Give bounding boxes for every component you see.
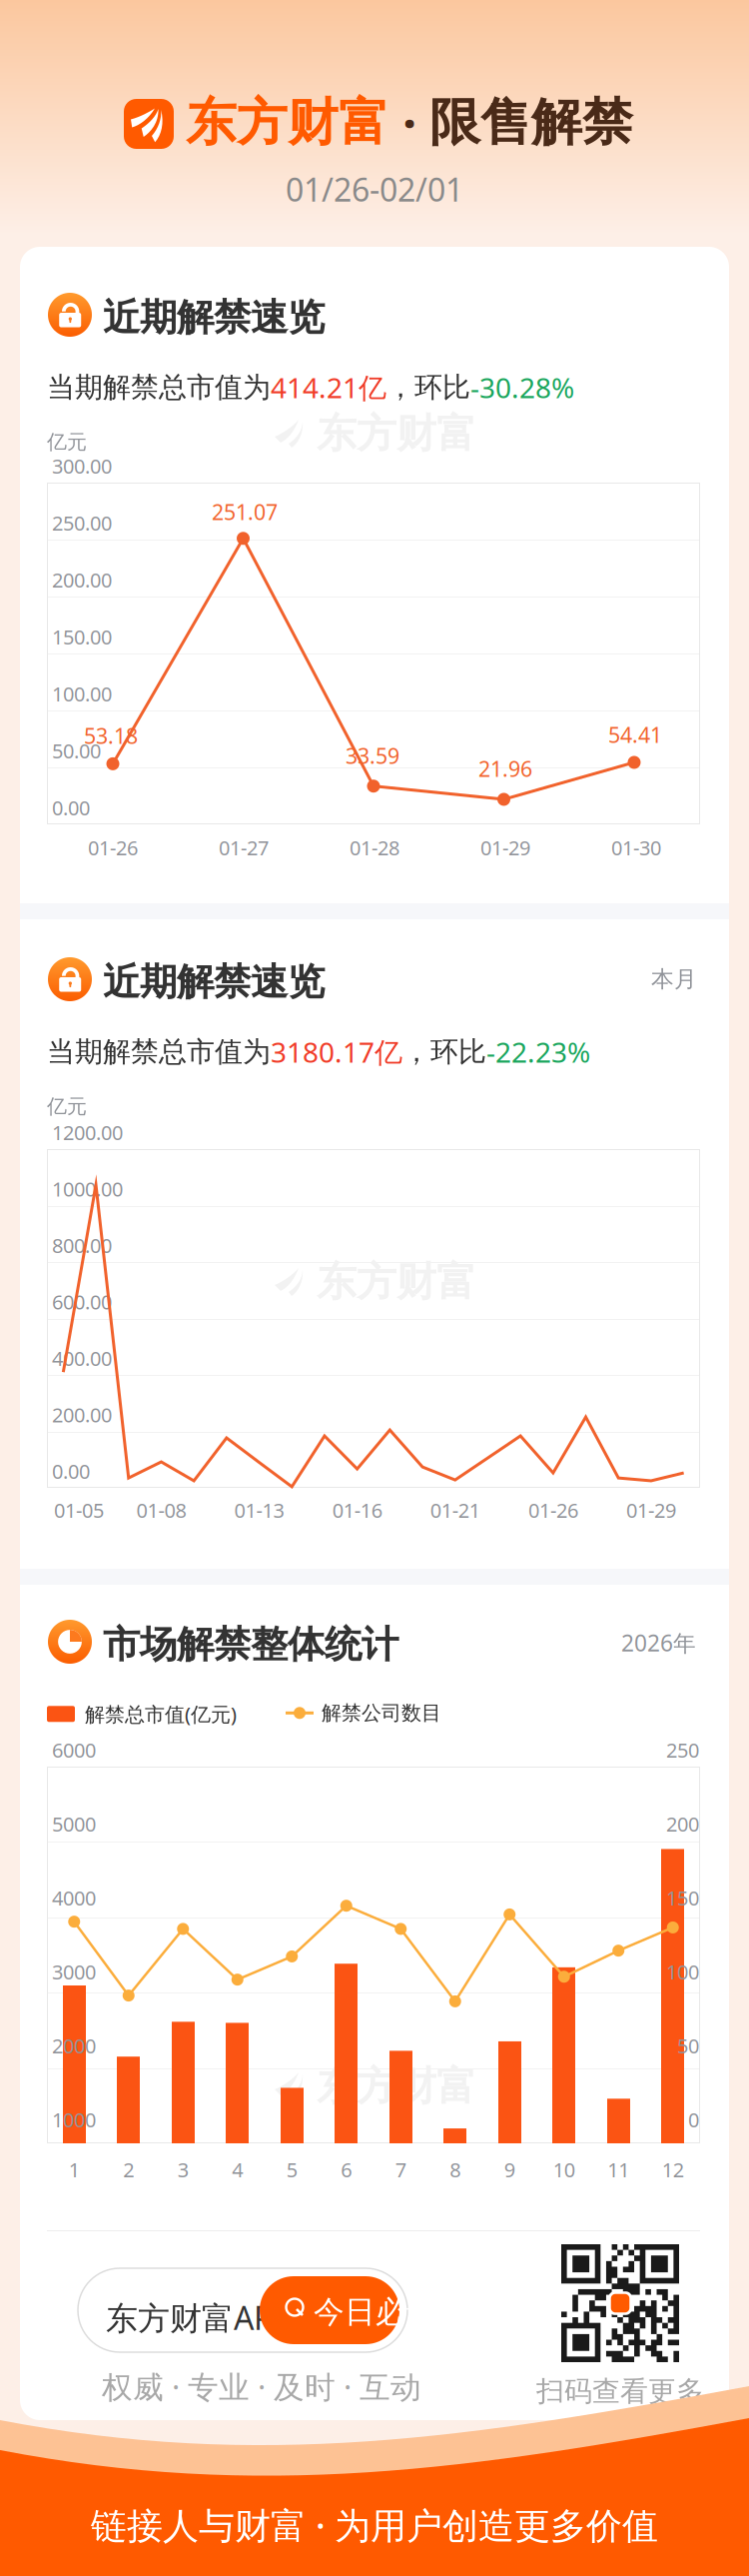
staticText: 4000 <box>52 1885 96 1911</box>
staticText: 东方财富APP <box>106 2296 292 2339</box>
staticText: 53.18 <box>84 721 138 750</box>
staticText: 250 <box>666 1737 699 1763</box>
staticText: 4 <box>232 2156 243 2183</box>
staticText: 01-28 <box>350 834 399 861</box>
staticText: 5 <box>286 2156 297 2183</box>
staticText: 01-05 <box>54 1497 104 1523</box>
staticText: ，环比 <box>386 370 470 404</box>
staticText: 当期解禁总市值为 <box>47 370 271 404</box>
staticText: 50 <box>677 2032 699 2059</box>
staticText: 11 <box>607 2156 629 2183</box>
staticText: 3 <box>178 2156 189 2183</box>
staticText: 亿元 <box>47 1094 87 1119</box>
staticText: 0.00 <box>52 1458 90 1484</box>
staticText: 5000 <box>52 1811 96 1837</box>
staticText: 01/26-02/01 <box>286 168 463 210</box>
staticText: 链接人与财富 · 为用户创造更多价值 <box>91 2501 658 2549</box>
staticText: 东方财富 <box>317 1257 476 1306</box>
staticText: 8 <box>450 2156 461 2183</box>
staticText: 100 <box>666 1958 699 1985</box>
staticText: 300.00 <box>52 453 112 479</box>
staticText: 800.00 <box>52 1232 112 1259</box>
staticText: 01-13 <box>234 1497 284 1523</box>
staticText: 21.96 <box>478 754 532 783</box>
staticText: 东方财富 <box>317 2062 476 2111</box>
staticText: 0 <box>688 2106 699 2133</box>
staticText: 01-30 <box>611 834 661 861</box>
staticText: 12 <box>662 2156 684 2183</box>
staticText: 2026年 <box>621 1628 696 1658</box>
staticText: 7 <box>395 2156 406 2183</box>
staticText: 1000.00 <box>52 1176 123 1202</box>
staticText: 2 <box>123 2156 134 2183</box>
staticText: 市场解禁整体统计 <box>103 1622 398 1668</box>
staticText: 400.00 <box>52 1345 112 1372</box>
staticText: 亿元 <box>47 430 87 454</box>
staticText: 10 <box>553 2156 575 2183</box>
staticText: 东方财富 <box>186 91 389 154</box>
staticText: 250.00 <box>52 510 112 536</box>
staticText: 扫码查看更多 <box>536 2374 704 2409</box>
staticText: 1200.00 <box>52 1119 123 1146</box>
staticText: 3180.17亿 <box>271 1033 402 1070</box>
staticText: -30.28% <box>470 369 574 406</box>
staticText: 200 <box>666 1811 699 1837</box>
staticText: 01-26 <box>88 834 138 861</box>
staticText: 100.00 <box>52 680 112 707</box>
staticText: 1 <box>69 2156 80 2183</box>
staticText: -22.23% <box>486 1033 590 1070</box>
staticText: · <box>389 89 429 156</box>
staticText: 50.00 <box>52 737 101 764</box>
staticText: 9 <box>504 2156 515 2183</box>
staticText: 近期解禁速览 <box>103 959 325 1005</box>
staticText: 200.00 <box>52 1401 112 1428</box>
button[interactable]: 东方财富APP <box>78 2268 407 2352</box>
staticText: 本月 <box>651 965 697 993</box>
staticText: 01-26 <box>528 1497 578 1523</box>
staticText: 54.41 <box>608 720 662 749</box>
staticText: 限售解禁 <box>429 91 633 154</box>
staticText: 01-21 <box>430 1497 480 1523</box>
staticText: 解禁公司数目 <box>322 1701 441 1725</box>
staticText: 01-29 <box>626 1497 676 1523</box>
staticText: 150 <box>666 1885 699 1911</box>
staticText: 6 <box>341 2156 352 2183</box>
staticText: 当期解禁总市值为 <box>47 1035 271 1069</box>
staticText: 6000 <box>52 1737 96 1763</box>
staticText: 33.59 <box>346 741 399 770</box>
staticText: 1000 <box>52 2106 96 2133</box>
staticText: 权威 · 专业 · 及时 · 互动 <box>102 2366 421 2407</box>
staticText: 600.00 <box>52 1288 112 1315</box>
staticText: 0.00 <box>52 794 90 821</box>
staticText: 今日必读 <box>314 2293 437 2331</box>
staticText: 01-29 <box>480 834 530 861</box>
staticText: ，环比 <box>402 1035 486 1069</box>
staticText: 解禁总市值(亿元) <box>85 1701 237 1727</box>
staticText: 东方财富 <box>317 409 476 458</box>
staticText: 2000 <box>52 2032 96 2059</box>
staticText: 01-16 <box>332 1497 382 1523</box>
staticText: 150.00 <box>52 624 112 650</box>
staticText: 01-08 <box>136 1497 186 1523</box>
staticText: 251.07 <box>212 498 278 526</box>
staticText: 3000 <box>52 1958 96 1985</box>
staticText: 01-27 <box>219 834 269 861</box>
staticText: 近期解禁速览 <box>103 295 325 341</box>
staticText: 200.00 <box>52 567 112 593</box>
staticText: 414.21亿 <box>271 369 386 406</box>
